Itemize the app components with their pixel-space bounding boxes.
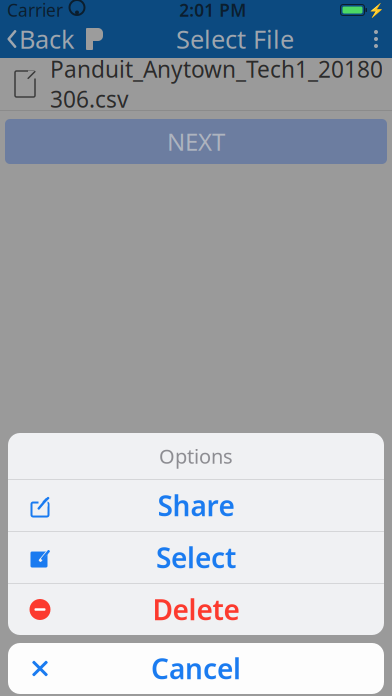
button[interactable]: Back bbox=[0, 16, 79, 62]
button[interactable]: Delete bbox=[8, 584, 384, 635]
button[interactable]: Cancel bbox=[8, 643, 384, 694]
button[interactable]: Panduit home bbox=[79, 23, 110, 54]
staticText: Panduit_Anytown_Tech1_20180306.csv bbox=[50, 54, 383, 114]
staticText: NEXT bbox=[167, 126, 225, 157]
staticText: Select bbox=[156, 539, 236, 576]
button[interactable]: More options bbox=[360, 22, 392, 56]
staticText: ⚡ bbox=[368, 2, 385, 18]
staticText: Cancel bbox=[151, 650, 241, 687]
button[interactable]: Panduit_Anytown_Tech1_20180306.csv bbox=[0, 58, 392, 110]
staticText: 2:01 PM bbox=[179, 0, 246, 21]
staticText: Share bbox=[157, 487, 234, 524]
button[interactable]: Select bbox=[8, 532, 384, 583]
button[interactable]: Share bbox=[8, 480, 384, 531]
button[interactable]: NEXT bbox=[5, 119, 387, 164]
staticText: Select File bbox=[176, 22, 294, 56]
staticText: Options bbox=[159, 443, 233, 469]
staticText: Carrier bbox=[7, 0, 63, 21]
staticText: Back bbox=[19, 22, 75, 56]
staticText: Delete bbox=[152, 591, 239, 628]
